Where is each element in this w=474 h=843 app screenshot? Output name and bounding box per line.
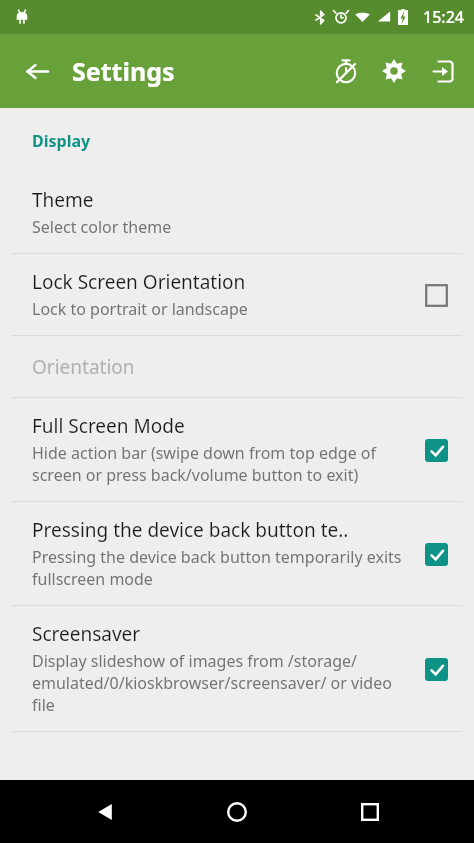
- staticText: Lock Screen Orientation: [32, 269, 246, 295]
- staticText: Settings: [72, 54, 175, 88]
- staticText: Hide action bar (swipe down from top edg…: [32, 442, 406, 486]
- staticText: Lock to portrait or landscape: [32, 298, 248, 320]
- button[interactable]: Home: [209, 784, 265, 840]
- button[interactable]: Exit: [418, 47, 466, 95]
- button[interactable]: Unchecked: [416, 275, 456, 315]
- staticText: Pressing the device back button te..: [32, 517, 349, 543]
- button[interactable]: Pressing the device back button te..: [0, 502, 474, 605]
- staticText: Theme: [32, 187, 94, 213]
- button[interactable]: Checked: [416, 534, 456, 574]
- button[interactable]: Recents: [342, 784, 398, 840]
- button[interactable]: Checked: [416, 649, 456, 689]
- button[interactable]: Timer off: [322, 47, 370, 95]
- staticText: Select color theme: [32, 216, 172, 238]
- staticText: Orientation: [32, 354, 135, 380]
- button[interactable]: Settings: [370, 47, 418, 95]
- button[interactable]: Full Screen Mode: [0, 398, 474, 501]
- button[interactable]: Orientation: [0, 336, 474, 397]
- staticText: Pressing the device back button temporar…: [32, 546, 406, 590]
- button[interactable]: Back: [14, 48, 60, 94]
- staticText: Screensaver: [32, 621, 141, 647]
- staticText: Display: [32, 130, 91, 152]
- staticText: Full Screen Mode: [32, 413, 185, 439]
- button[interactable]: Back: [77, 784, 133, 840]
- button[interactable]: Theme: [0, 172, 474, 253]
- button[interactable]: Screensaver: [0, 606, 474, 731]
- button[interactable]: Lock Screen Orientation: [0, 254, 474, 335]
- staticText: 15:24: [423, 6, 464, 28]
- button[interactable]: Checked: [416, 430, 456, 470]
- staticText: Display slideshow of images from /storag…: [32, 650, 406, 716]
